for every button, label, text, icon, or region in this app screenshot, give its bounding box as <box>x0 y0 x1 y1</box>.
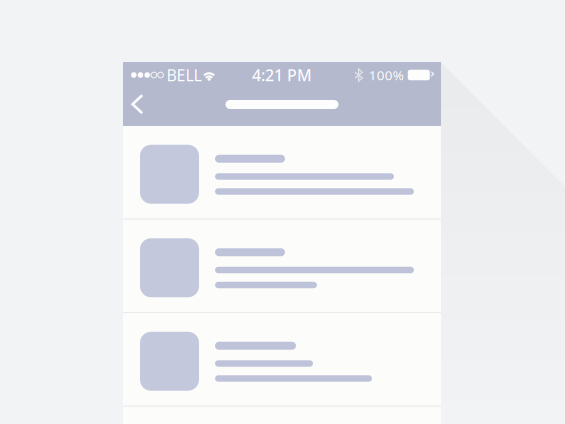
button[interactable]: List item <box>123 219 441 313</box>
staticText: 4:21 PM <box>252 64 312 86</box>
staticText: 100% <box>369 66 404 84</box>
button[interactable]: List item <box>123 313 441 406</box>
staticText: BELL <box>166 64 201 86</box>
button[interactable]: List item <box>123 126 441 219</box>
button[interactable]: Back <box>123 88 158 126</box>
